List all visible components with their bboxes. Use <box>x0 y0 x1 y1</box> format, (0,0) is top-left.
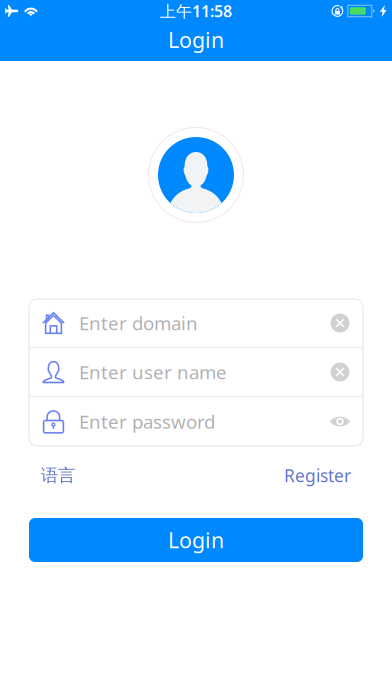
staticText: Register <box>284 464 351 487</box>
staticText: 语言 <box>41 465 75 486</box>
button[interactable]: Show password <box>324 397 356 446</box>
staticText: 上午11:58 <box>160 0 232 22</box>
button[interactable]: Register <box>272 459 363 492</box>
staticText: Enter user name <box>79 360 227 384</box>
button[interactable]: 语言 <box>29 460 87 491</box>
staticText: Login <box>168 26 224 54</box>
staticText: Enter password <box>79 409 215 434</box>
button[interactable]: Clear user name <box>324 348 356 396</box>
button[interactable]: Login <box>29 518 363 562</box>
staticText: Login <box>168 526 224 554</box>
button[interactable]: Clear domain <box>324 299 356 347</box>
staticText: Enter domain <box>79 311 198 335</box>
